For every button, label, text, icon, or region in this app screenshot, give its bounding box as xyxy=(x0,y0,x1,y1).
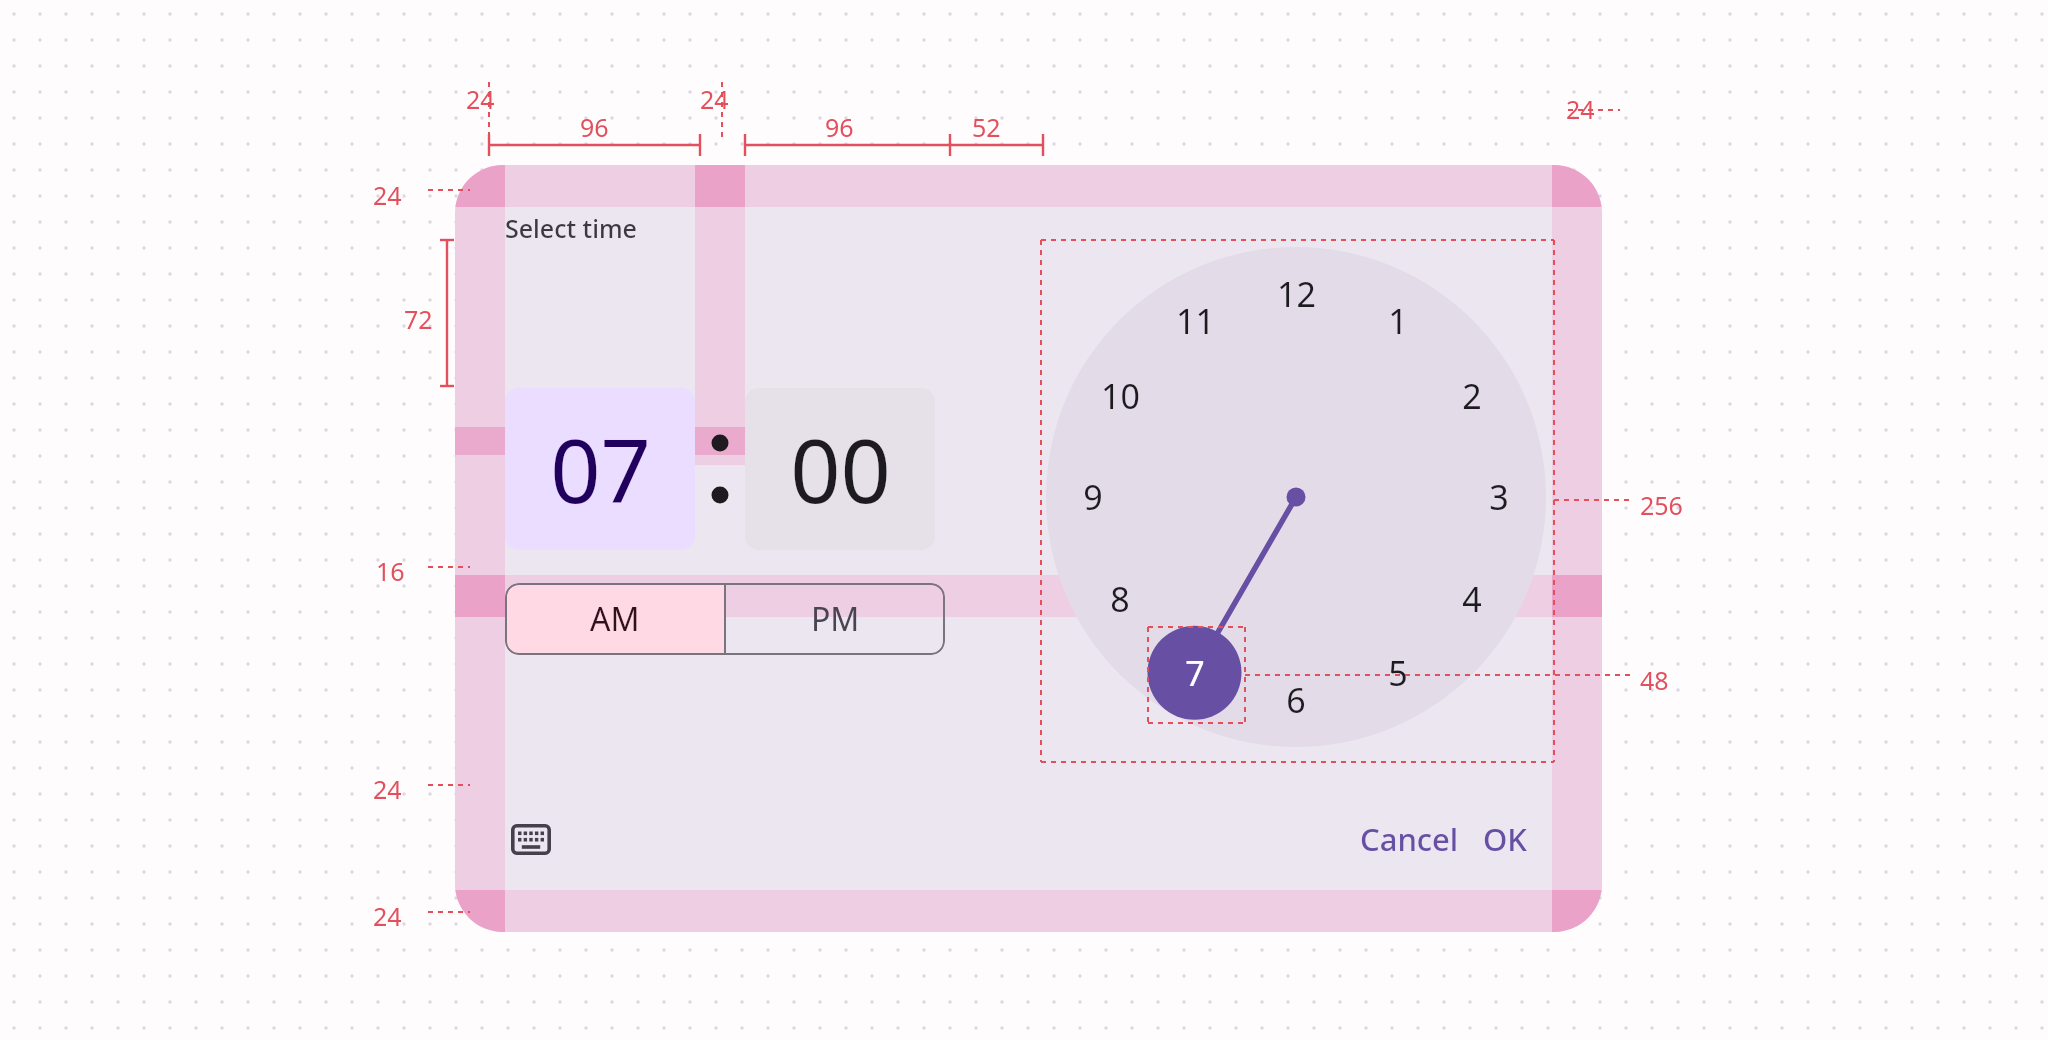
staticText: PM xyxy=(811,597,860,641)
button[interactable]: OK xyxy=(1458,810,1552,868)
staticText: 24 xyxy=(373,772,402,806)
staticText: 12 xyxy=(1277,271,1316,317)
button[interactable]: AM xyxy=(505,583,724,655)
staticText: 3 xyxy=(1489,474,1509,520)
button[interactable]: PM xyxy=(726,583,945,655)
button[interactable]: 07 xyxy=(505,388,695,550)
staticText: 72 xyxy=(404,302,433,336)
staticText: 52 xyxy=(972,110,1001,144)
staticText: 9 xyxy=(1083,474,1103,520)
button[interactable]: Clock dial, 7 selected xyxy=(991,182,1601,802)
staticText: 256 xyxy=(1640,488,1683,522)
staticText: Select time xyxy=(505,211,637,245)
staticText: 96 xyxy=(825,110,854,144)
staticText: 11 xyxy=(1176,298,1215,344)
button[interactable]: Switch to text input xyxy=(503,811,559,867)
staticText: 4 xyxy=(1462,576,1482,622)
button[interactable]: Cancel xyxy=(1333,810,1485,868)
staticText: 00 xyxy=(790,409,891,529)
staticText: 16 xyxy=(376,554,405,588)
staticText: 24 xyxy=(700,82,729,116)
staticText: 10 xyxy=(1101,373,1140,419)
staticText: 1 xyxy=(1388,298,1408,344)
staticText: 07 xyxy=(550,409,651,529)
staticText: 7 xyxy=(1185,650,1205,696)
staticText: 24 xyxy=(373,178,402,212)
staticText: 6 xyxy=(1286,677,1306,723)
staticText: 5 xyxy=(1388,650,1408,696)
button[interactable]: 00 xyxy=(745,388,935,550)
staticText: 2 xyxy=(1462,373,1482,419)
staticText: 48 xyxy=(1640,663,1669,697)
staticText: OK xyxy=(1483,818,1527,860)
staticText: 24 xyxy=(373,899,402,933)
staticText: 24 xyxy=(466,82,495,116)
staticText: AM xyxy=(590,597,640,641)
staticText: 8 xyxy=(1110,576,1130,622)
staticText: 24 xyxy=(1566,92,1595,126)
staticText: Cancel xyxy=(1360,818,1459,860)
staticText: 96 xyxy=(580,110,609,144)
